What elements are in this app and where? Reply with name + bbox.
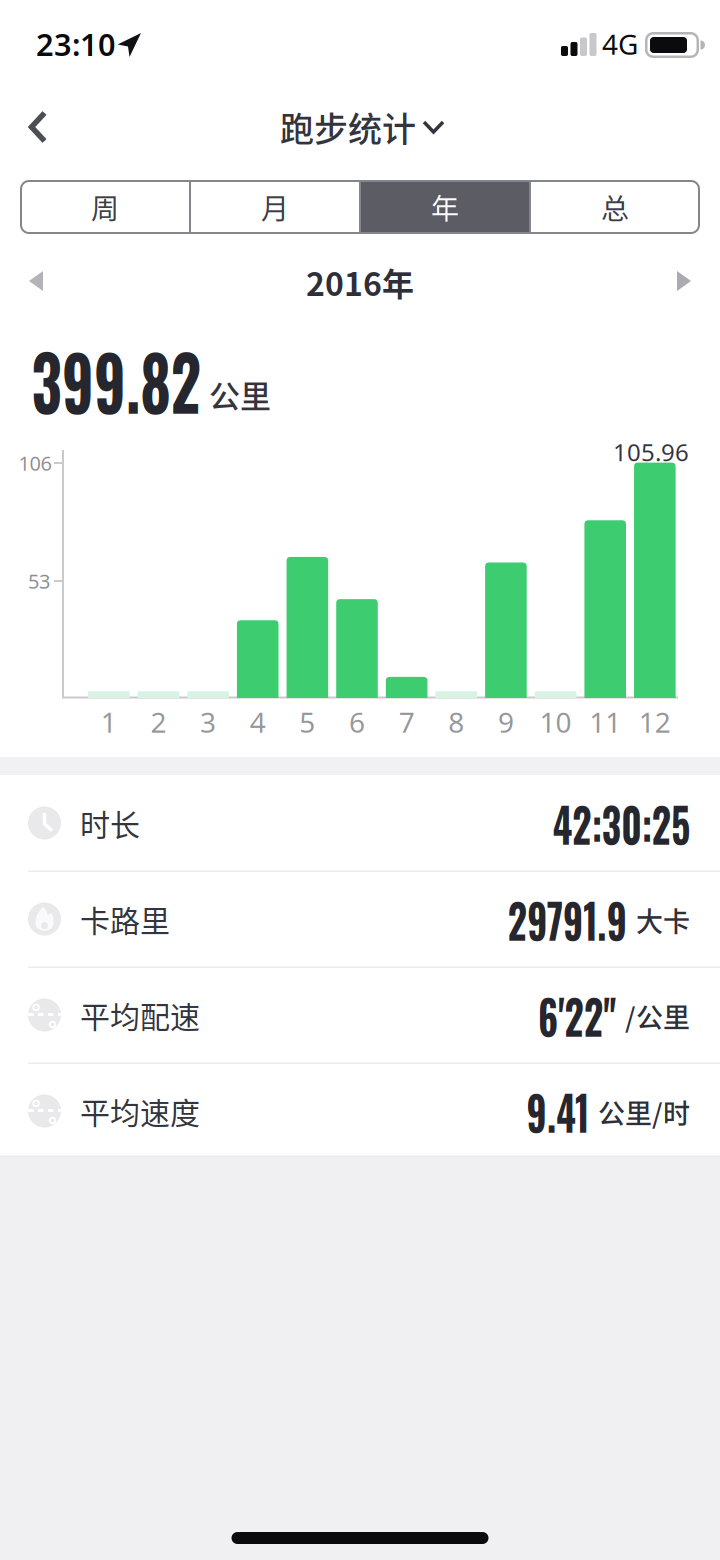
staticText: 5 <box>299 703 315 741</box>
staticText: 总 <box>601 187 629 227</box>
staticText: 53 <box>28 568 50 594</box>
staticText: 平均速度 <box>80 1089 200 1133</box>
staticText: 1 <box>101 703 117 741</box>
button[interactable]: 跑步统计 <box>267 105 453 149</box>
staticText: 106 <box>18 450 51 476</box>
staticText: 6 <box>349 703 365 741</box>
staticText: 9.41 <box>509 1075 589 1146</box>
staticText: 跑步统计 <box>280 102 416 152</box>
staticText: 大卡 <box>636 900 690 940</box>
staticText: 29791.9 <box>474 883 627 954</box>
staticText: 10 <box>540 703 572 741</box>
staticText: 12 <box>639 703 671 741</box>
button[interactable]: 总 <box>530 180 700 234</box>
button[interactable] <box>644 249 720 311</box>
staticText: 4G <box>602 25 638 63</box>
staticText: 8 <box>448 703 464 741</box>
staticText: 月 <box>261 187 289 227</box>
staticText: 399.82 <box>31 318 270 441</box>
staticText: 105.96 <box>613 436 689 468</box>
staticText: 时长 <box>80 801 140 845</box>
staticText: 11 <box>589 703 621 741</box>
staticText: 卡路里 <box>80 897 170 941</box>
staticText: 平均配速 <box>80 993 200 1037</box>
staticText: 6'22'' <box>516 979 616 1050</box>
staticText: 公里/时 <box>598 1092 690 1132</box>
staticText: 周 <box>91 187 119 227</box>
staticText: 7 <box>399 703 415 741</box>
button[interactable]: 年 <box>360 180 530 234</box>
button[interactable] <box>0 249 76 311</box>
staticText: 9 <box>498 703 514 741</box>
staticText: 23:10 <box>36 24 116 64</box>
staticText: 4 <box>250 703 266 741</box>
button[interactable]: 月 <box>190 180 360 234</box>
staticText: 3 <box>200 703 216 741</box>
button[interactable]: 周 <box>20 180 190 234</box>
staticText: 公里 <box>209 372 271 416</box>
staticText: 年 <box>431 187 459 227</box>
staticText: 2016年 <box>306 259 414 305</box>
staticText: 2 <box>150 703 166 741</box>
staticText: /公里 <box>625 996 690 1036</box>
staticText: 42:30:25 <box>514 787 690 858</box>
button[interactable] <box>0 106 66 148</box>
